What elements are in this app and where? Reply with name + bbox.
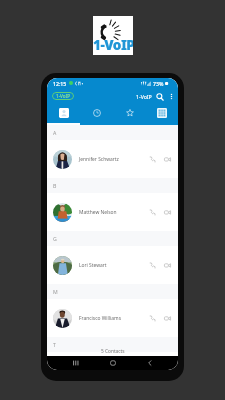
button[interactable]: 1-VoIP bbox=[52, 92, 74, 100]
staticText: Lori Stewart bbox=[79, 262, 107, 269]
staticText: T bbox=[53, 341, 56, 348]
button[interactable]: Recents bbox=[57, 356, 94, 370]
button[interactable]: More options bbox=[167, 92, 176, 101]
button[interactable]: Francisco Williams bbox=[47, 299, 178, 337]
staticText: G bbox=[53, 235, 57, 242]
staticText: 73% bbox=[153, 80, 164, 87]
staticText: 1-VoIP bbox=[56, 93, 71, 99]
button[interactable]: Matthew Nelson bbox=[47, 193, 178, 231]
staticText: A bbox=[53, 129, 57, 136]
button[interactable]: Dialpad bbox=[146, 104, 178, 122]
button[interactable]: Call bbox=[146, 312, 158, 324]
button[interactable]: Jennifer Schwartz bbox=[47, 140, 178, 178]
staticText: B bbox=[53, 182, 57, 189]
staticText: M bbox=[53, 288, 58, 295]
staticText: 12:15 bbox=[53, 80, 67, 87]
button[interactable]: Video call bbox=[161, 206, 173, 218]
button[interactable]: Call bbox=[146, 206, 158, 218]
staticText: Matthew Nelson bbox=[79, 209, 117, 216]
button[interactable]: Video call bbox=[161, 312, 173, 324]
button[interactable]: Search bbox=[154, 91, 165, 102]
button[interactable]: Video call bbox=[161, 153, 173, 165]
button[interactable]: Recents bbox=[80, 104, 113, 122]
staticText: 1-VoIP bbox=[93, 36, 133, 54]
staticText: Jennifer Schwartz bbox=[79, 156, 119, 163]
button[interactable]: Contacts bbox=[47, 104, 80, 122]
button[interactable]: Call bbox=[146, 259, 158, 271]
button[interactable]: Call bbox=[146, 153, 158, 165]
button[interactable]: Favorites bbox=[113, 104, 146, 122]
button[interactable]: Video call bbox=[161, 259, 173, 271]
staticText: Francisco Williams bbox=[79, 315, 122, 322]
staticText: 1-VoIP bbox=[136, 93, 152, 100]
button[interactable]: Back bbox=[131, 356, 168, 370]
button[interactable]: Lori Stewart bbox=[47, 246, 178, 284]
button[interactable]: Home bbox=[94, 356, 131, 370]
staticText: 5 Contacts bbox=[101, 348, 125, 355]
